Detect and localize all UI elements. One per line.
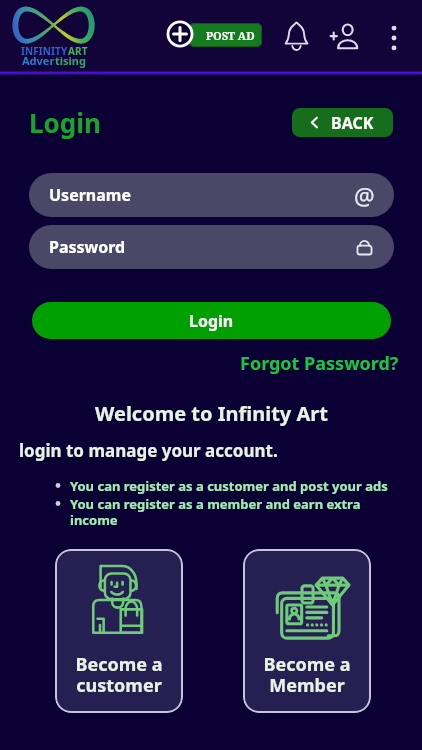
staticText: POST AD	[206, 28, 255, 43]
button[interactable]: Become a customer	[55, 549, 183, 713]
staticText: ART	[68, 44, 88, 58]
button[interactable]: More options	[382, 19, 406, 56]
staticText: You can register as a customer and post …	[70, 477, 388, 495]
staticText: BACK	[331, 112, 374, 134]
staticText: You can register as a member and earn ex…	[70, 495, 361, 528]
staticText: login to manage your account.	[19, 439, 278, 462]
staticText: Login	[189, 310, 234, 332]
button[interactable]: Become a Member	[243, 549, 371, 713]
staticText: Become a Member	[263, 652, 351, 698]
staticText: Forgot Password?	[240, 351, 399, 376]
staticText: Username	[49, 184, 131, 206]
staticText: Adver	[22, 53, 55, 68]
staticText: Password	[49, 236, 126, 258]
staticText: INFINITY	[21, 44, 68, 58]
staticText: Become a customer	[75, 652, 163, 698]
button[interactable]: Infinity Art Advertising	[8, 2, 100, 72]
button[interactable]: Notifications	[280, 17, 313, 54]
staticText: tising	[55, 53, 86, 68]
button[interactable]: Password	[29, 225, 394, 269]
button[interactable]: Forgot Password?	[240, 351, 399, 376]
button[interactable]: POST AD	[166, 20, 263, 48]
staticText: Login	[29, 105, 101, 140]
button[interactable]: Login	[32, 302, 391, 339]
staticText: Welcome to Infinity Art	[95, 400, 328, 427]
button[interactable]: Username	[29, 173, 394, 217]
button[interactable]: BACK	[292, 108, 393, 137]
staticText: @	[354, 180, 375, 211]
button[interactable]: Add person	[326, 17, 365, 54]
button[interactable]: Login	[29, 105, 101, 140]
